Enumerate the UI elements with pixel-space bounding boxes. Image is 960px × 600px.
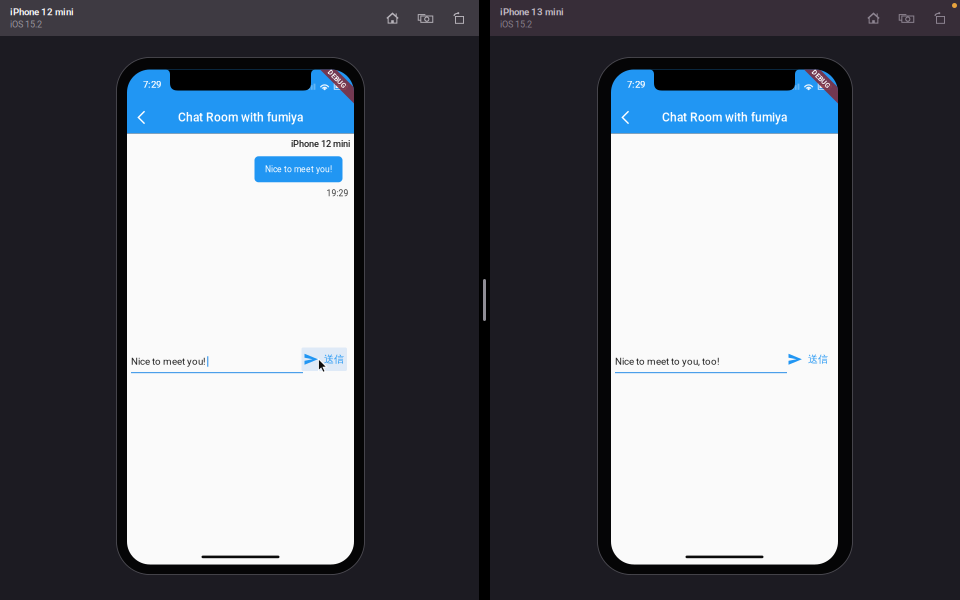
button[interactable]: Screenshot bbox=[895, 6, 918, 30]
staticText: iOS 15.2 bbox=[10, 19, 42, 30]
staticText: iPhone 12 mini bbox=[291, 138, 350, 149]
button[interactable]: Back bbox=[611, 101, 639, 133]
button[interactable]: Screenshot bbox=[414, 6, 437, 30]
staticText: 19:29 bbox=[326, 188, 348, 198]
staticText: Chat Room with fumiya bbox=[178, 110, 303, 125]
staticText: Chat Room with fumiya bbox=[662, 110, 787, 125]
button[interactable]: Rotate bbox=[447, 6, 470, 30]
staticText: 送信 bbox=[324, 353, 344, 366]
staticText: 7:29 bbox=[627, 79, 645, 90]
button[interactable]: 送信 bbox=[785, 347, 831, 371]
staticText: iPhone 12 mini bbox=[10, 6, 74, 18]
staticText: Nice to meet you! bbox=[131, 356, 206, 367]
staticText: 7:29 bbox=[143, 79, 161, 90]
button[interactable]: Back bbox=[127, 101, 155, 133]
button[interactable]: Home bbox=[862, 6, 885, 30]
staticText: Nice to meet you! bbox=[265, 164, 332, 174]
button[interactable]: Home bbox=[381, 6, 404, 30]
staticText: iOS 15.2 bbox=[500, 19, 532, 30]
button[interactable]: 送信 bbox=[301, 347, 347, 371]
staticText: 送信 bbox=[808, 353, 828, 366]
button[interactable]: Rotate bbox=[928, 6, 951, 30]
staticText: DEBUG bbox=[809, 75, 832, 83]
staticText: Nice to meet to you, too! bbox=[615, 356, 720, 367]
staticText: iPhone 13 mini bbox=[500, 6, 564, 18]
staticText: DEBUG bbox=[325, 75, 348, 83]
